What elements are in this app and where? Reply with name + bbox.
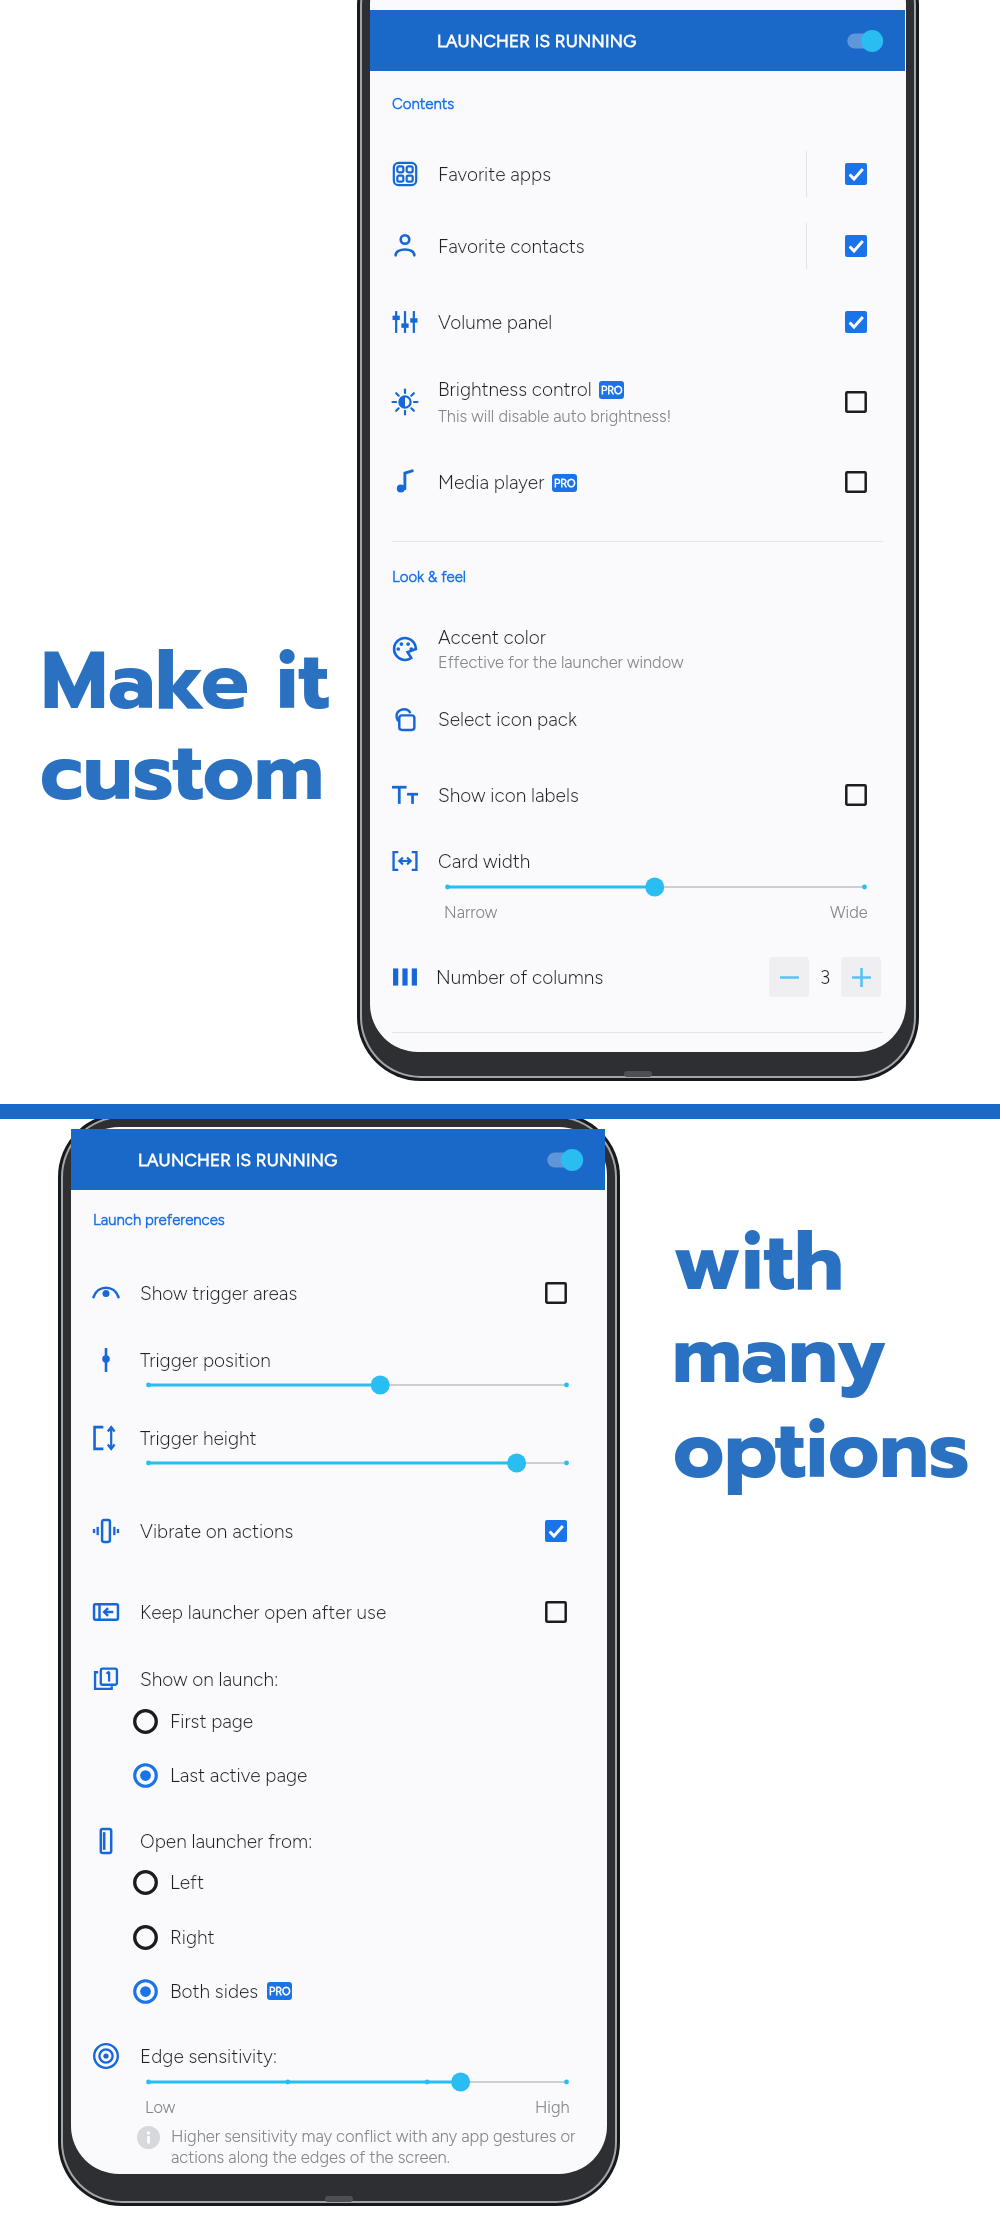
staticText: LAUNCHER IS RUNNING: [138, 1150, 338, 1170]
button[interactable]: Toggle launcher running: [531, 1138, 587, 1182]
staticText: PRO: [269, 1985, 291, 1998]
button[interactable]: Keep launcher open after use checkbox: [507, 1582, 605, 1642]
staticText: Media player: [438, 471, 545, 494]
staticText: 3: [820, 966, 831, 989]
staticText: Show on launch:: [140, 1668, 583, 1691]
staticText: Brightness control: [438, 378, 592, 401]
button[interactable]: Open launcher from:: [71, 1811, 605, 1871]
staticText: Open launcher from:: [140, 1830, 583, 1853]
staticText: Trigger height: [140, 1427, 583, 1450]
staticText: Show icon labels: [438, 784, 579, 807]
staticText: First page: [170, 1710, 254, 1733]
staticText: with: [673, 1202, 844, 1323]
button[interactable]: Trigger position: [71, 1330, 605, 1390]
button[interactable]: Select icon pack: [370, 689, 905, 749]
staticText: Last active page: [170, 1764, 308, 1787]
staticText: Contents: [392, 95, 455, 113]
staticText: Right: [170, 1926, 215, 1949]
button[interactable]: Both sides: [71, 1966, 605, 2016]
staticText: Favorite contacts: [438, 235, 585, 258]
button[interactable]: Right: [71, 1912, 605, 1962]
button[interactable]: LAUNCHER IS RUNNING: [71, 1129, 605, 1190]
staticText: Accent color: [438, 626, 883, 649]
staticText: Low: [145, 2097, 176, 2117]
button[interactable]: LAUNCHER IS RUNNING: [370, 10, 905, 71]
button[interactable]: Last active page: [71, 1750, 605, 1800]
staticText: Both sides: [170, 1980, 259, 2003]
staticText: Keep launcher open after use: [140, 1601, 387, 1624]
staticText: options: [673, 1390, 970, 1511]
staticText: Make it: [41, 621, 330, 742]
button[interactable]: Show trigger areas: [71, 1263, 605, 1323]
staticText: Left: [170, 1871, 204, 1894]
staticText: Number of columns: [436, 966, 769, 989]
button[interactable]: Keep launcher open after use: [71, 1582, 605, 1642]
staticText: Vibrate on actions: [140, 1520, 294, 1543]
button[interactable]: First page: [71, 1696, 605, 1746]
staticText: Narrow: [444, 902, 498, 922]
button[interactable]: Increase columns: [841, 957, 881, 997]
staticText: Look & feel: [392, 568, 467, 586]
staticText: Select icon pack: [438, 708, 883, 731]
button[interactable]: Left: [71, 1857, 605, 1907]
button[interactable]: Trigger height: [71, 1408, 605, 1468]
staticText: LAUNCHER IS RUNNING: [437, 31, 637, 51]
staticText: Edge sensitivity:: [140, 2045, 583, 2068]
staticText: Launch preferences: [93, 1211, 225, 1229]
staticText: custom: [40, 712, 324, 833]
staticText: Favorite apps: [438, 163, 552, 186]
button[interactable]: Vibrate on actions: [71, 1501, 605, 1561]
button[interactable]: Show on launch:: [71, 1649, 605, 1709]
button[interactable]: Accent color: [370, 607, 905, 667]
staticText: High: [535, 2097, 570, 2117]
button[interactable]: Decrease columns: [769, 957, 809, 997]
staticText: This will disable auto brightness!: [438, 406, 672, 426]
button[interactable]: Brightness control: [370, 359, 905, 419]
staticText: Show trigger areas: [140, 1282, 298, 1305]
button[interactable]: Favorite contacts: [370, 216, 905, 276]
button[interactable]: Card width: [370, 831, 905, 891]
button[interactable]: Favorite apps: [370, 144, 905, 204]
button[interactable]: Edge sensitivity:: [71, 2026, 605, 2086]
button[interactable]: Number of columns: [370, 947, 905, 1007]
button[interactable]: Media player checkbox: [807, 452, 905, 512]
button[interactable]: Show trigger areas checkbox: [507, 1263, 605, 1323]
button[interactable]: Volume panel checkbox: [807, 292, 905, 352]
staticText: PRO: [554, 477, 576, 490]
button[interactable]: Media player: [370, 452, 905, 512]
staticText: Effective for the launcher window: [438, 652, 684, 672]
staticText: Volume panel: [438, 311, 553, 334]
staticText: many: [672, 1295, 886, 1416]
staticText: Card width: [438, 850, 883, 873]
button[interactable]: Favorite apps checkbox: [807, 144, 905, 204]
button[interactable]: Toggle launcher running: [831, 19, 887, 63]
button[interactable]: Show icon labels: [370, 765, 905, 825]
button[interactable]: Volume panel: [370, 292, 905, 352]
button[interactable]: Vibrate on actions checkbox: [507, 1501, 605, 1561]
button[interactable]: Favorite contacts checkbox: [807, 216, 905, 276]
button[interactable]: Show icon labels checkbox: [807, 765, 905, 825]
staticText: PRO: [601, 384, 623, 397]
staticText: Wide: [830, 902, 868, 922]
staticText: Trigger position: [140, 1349, 583, 1372]
button[interactable]: Brightness control checkbox: [807, 372, 905, 432]
staticText: Higher sensitivity may conflict with any…: [171, 2126, 576, 2167]
